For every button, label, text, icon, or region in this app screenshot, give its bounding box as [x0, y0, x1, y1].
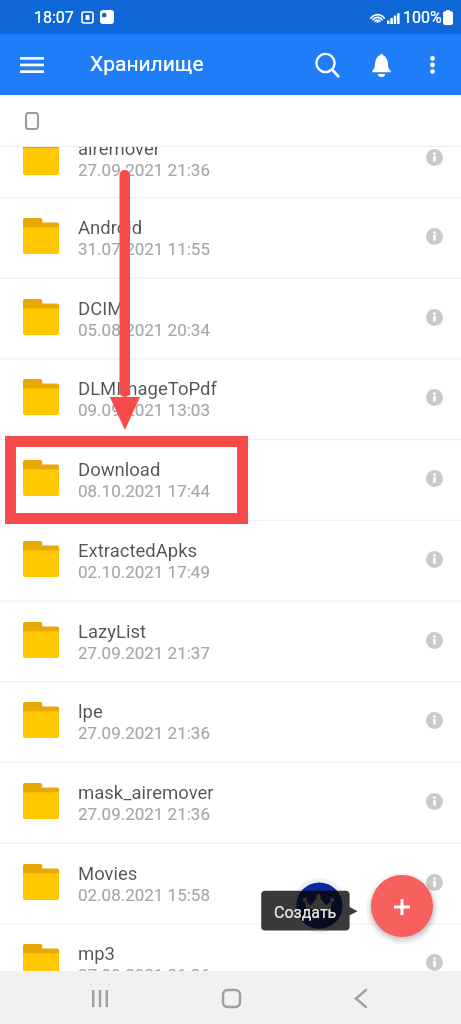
button[interactable]: ExtractedApks: [0, 521, 461, 601]
staticText: 100%: [403, 8, 442, 27]
staticText: Download: [78, 459, 161, 481]
button[interactable]: Details: [412, 940, 456, 984]
staticText: Создать: [274, 903, 337, 922]
button[interactable]: Details: [412, 618, 456, 662]
staticText: mask_airemover: [78, 782, 214, 804]
staticText: 05.08.2021 20:34: [78, 320, 210, 340]
button[interactable]: Open navigation drawer: [8, 41, 56, 89]
button[interactable]: LazyList: [0, 602, 461, 682]
button[interactable]: Create: [371, 875, 433, 937]
staticText: 18:07: [34, 8, 74, 27]
staticText: LazyList: [78, 621, 147, 643]
staticText: Movies: [78, 863, 138, 885]
button[interactable]: DLMImageToPdf: [0, 359, 461, 439]
staticText: 02.08.2021 15:58: [78, 885, 210, 905]
staticText: mp3: [78, 943, 116, 965]
button[interactable]: Details: [412, 698, 456, 742]
button[interactable]: Создать: [261, 891, 350, 931]
button[interactable]: airemover: [0, 146, 461, 197]
button[interactable]: Movies: [0, 844, 461, 924]
button[interactable]: Back: [331, 971, 391, 1024]
button[interactable]: mask_airemover: [0, 763, 461, 843]
button[interactable]: airemover: [0, 146, 461, 197]
staticText: ExtractedApks: [78, 540, 198, 562]
staticText: 27.09.2021 21:36: [78, 965, 210, 985]
other: Internal storage: [26, 113, 38, 129]
button[interactable]: Details: [412, 860, 456, 904]
staticText: 27.09.2021 21:37: [78, 643, 210, 663]
button[interactable]: Details: [412, 295, 456, 339]
staticText: airemover: [78, 146, 161, 160]
staticText: Хранилище: [90, 52, 204, 77]
button[interactable]: Android: [0, 198, 461, 278]
button[interactable]: Search: [303, 41, 351, 89]
staticText: lpe: [78, 701, 103, 723]
button[interactable]: Internal storage: [0, 95, 461, 146]
staticText: DCIM: [78, 298, 124, 320]
button[interactable]: Download: [0, 440, 461, 520]
button[interactable]: Home: [201, 971, 261, 1024]
button[interactable]: Details: [412, 146, 456, 179]
button[interactable]: lpe: [0, 682, 461, 762]
button[interactable]: mp3: [0, 924, 461, 1004]
button[interactable]: Details: [412, 375, 456, 419]
button[interactable]: DCIM: [0, 279, 461, 359]
staticText: 27.09.2021 21:36: [78, 160, 210, 180]
button[interactable]: Details: [412, 537, 456, 581]
staticText: 27.09.2021 21:36: [78, 804, 210, 824]
staticText: 08.10.2021 17:44: [78, 481, 210, 501]
staticText: 02.10.2021 17:49: [78, 562, 210, 582]
button[interactable]: Details: [412, 456, 456, 500]
button[interactable]: Recent apps: [70, 971, 130, 1024]
staticText: 31.07.2021 11:55: [78, 239, 210, 259]
staticText: 27.09.2021 21:36: [78, 723, 210, 743]
button[interactable]: Notifications: [357, 41, 405, 89]
staticText: 09.09.2021 13:03: [78, 400, 210, 420]
button[interactable]: More options: [408, 41, 456, 89]
button[interactable]: Details: [412, 214, 456, 258]
staticText: DLMImageToPdf: [78, 378, 217, 400]
button[interactable]: Details: [412, 779, 456, 823]
staticText: Android: [78, 217, 143, 239]
